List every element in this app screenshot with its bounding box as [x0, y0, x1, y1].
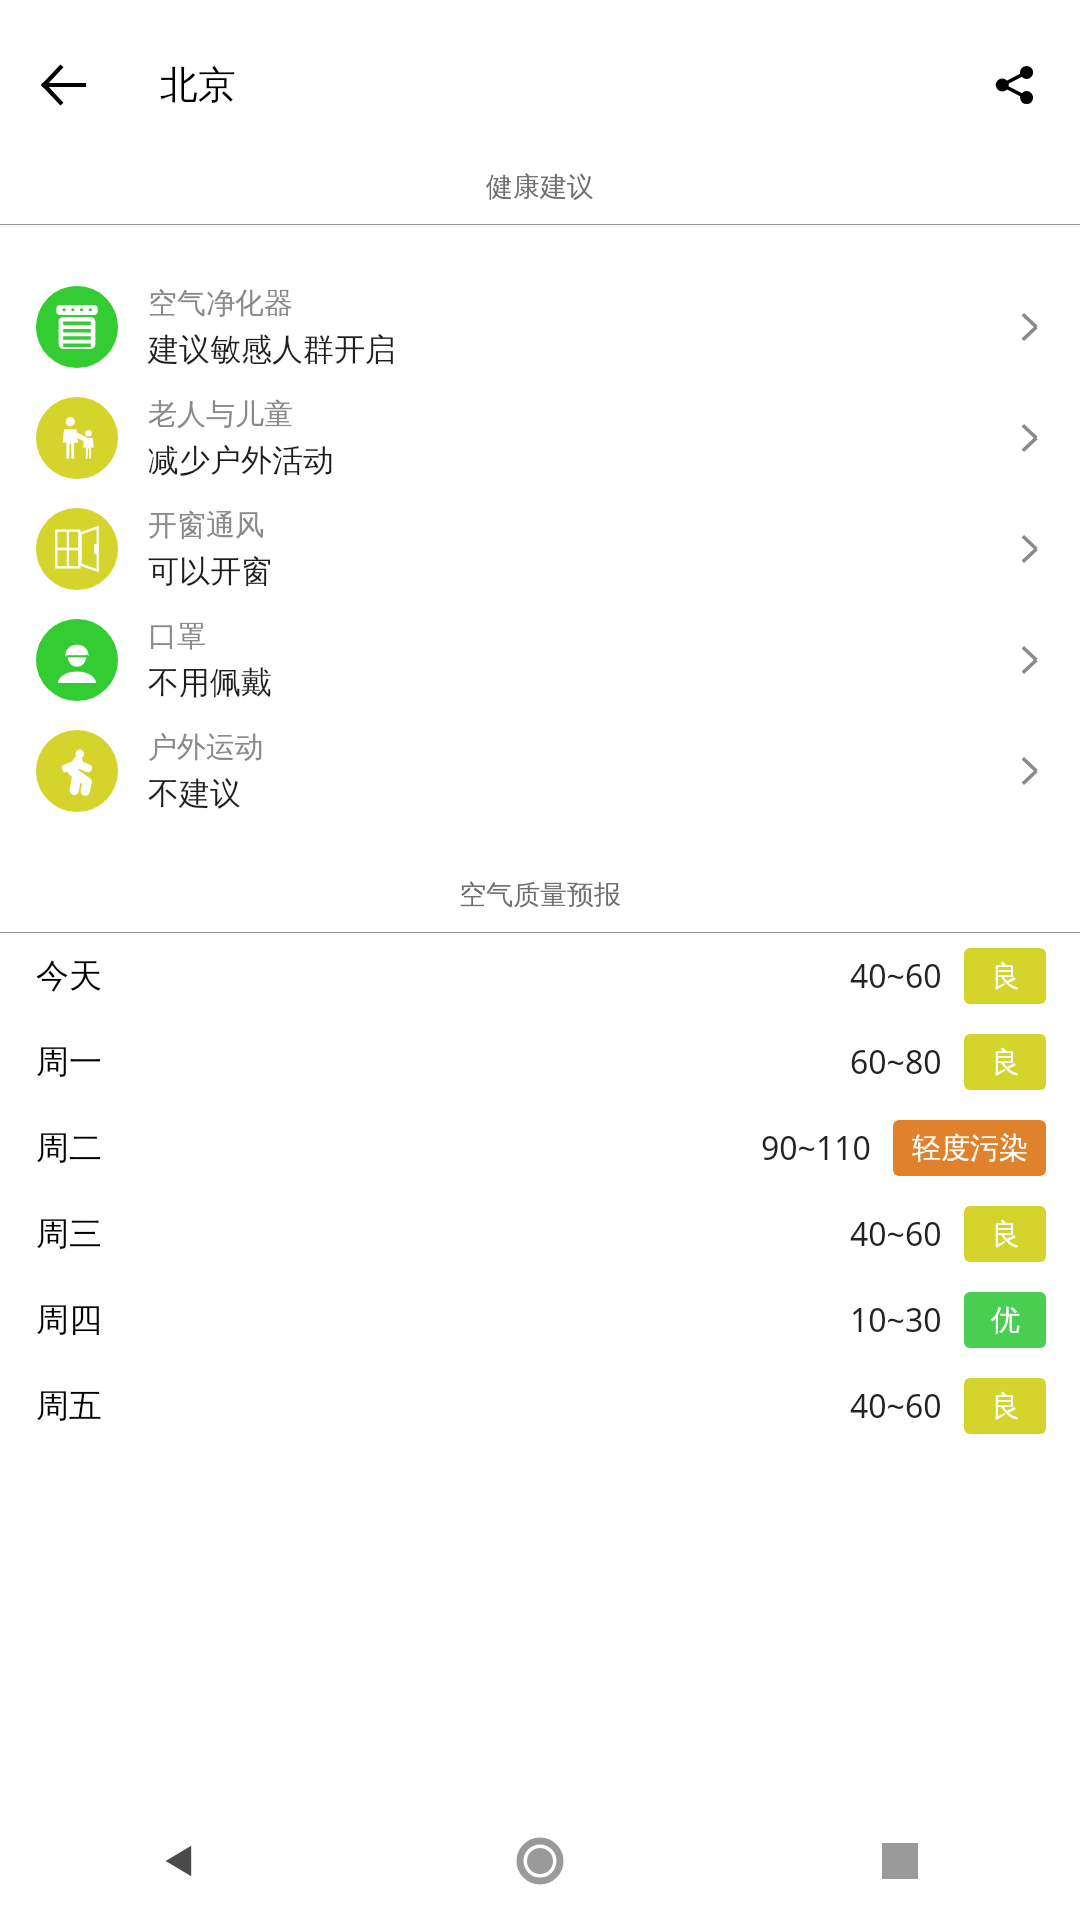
staticText: 良	[991, 1216, 1020, 1253]
staticText: 减少户外活动	[148, 441, 334, 480]
staticText: 开窗通风	[148, 507, 264, 544]
staticText: 空气质量预报	[0, 878, 1080, 912]
staticText: 周五	[36, 1385, 102, 1427]
button[interactable]: 周一	[0, 1019, 1080, 1105]
button[interactable]: 开窗通风	[0, 493, 1080, 604]
staticText: 建议敏感人群开启	[148, 330, 396, 369]
staticText: 健康建议	[0, 170, 1080, 204]
staticText: 空气净化器	[148, 285, 293, 322]
staticText: 周一	[36, 1041, 102, 1083]
staticText: 不用佩戴	[148, 663, 272, 702]
button[interactable]: Share	[978, 49, 1050, 121]
staticText: 可以开窗	[148, 552, 272, 591]
staticText: 良	[991, 958, 1020, 995]
button[interactable]: 周二	[0, 1105, 1080, 1191]
staticText: 10~30	[850, 1298, 942, 1342]
staticText: 老人与儿童	[148, 396, 293, 433]
button[interactable]: Home	[500, 1821, 580, 1901]
staticText: 不建议	[148, 774, 241, 813]
button[interactable]: Back	[28, 49, 100, 121]
staticText: 口罩	[148, 618, 206, 655]
staticText: 良	[991, 1044, 1020, 1081]
button[interactable]: Recents	[860, 1821, 940, 1901]
button[interactable]: 周三	[0, 1191, 1080, 1277]
staticText: 北京	[160, 61, 236, 109]
button[interactable]: 周四	[0, 1277, 1080, 1363]
staticText: 周二	[36, 1127, 102, 1169]
button[interactable]: 户外运动	[0, 715, 1080, 826]
staticText: 优	[991, 1302, 1020, 1339]
staticText: 40~60	[850, 1212, 942, 1256]
button[interactable]: Back	[140, 1821, 220, 1901]
staticText: 40~60	[850, 1384, 942, 1428]
button[interactable]: 口罩	[0, 604, 1080, 715]
staticText: 90~110	[761, 1126, 871, 1170]
staticText: 60~80	[850, 1040, 942, 1084]
staticText: 周四	[36, 1299, 102, 1341]
staticText: 轻度污染	[912, 1130, 1028, 1167]
staticText: 40~60	[850, 954, 942, 998]
button[interactable]: 今天	[0, 933, 1080, 1019]
button[interactable]: 空气净化器	[0, 271, 1080, 382]
staticText: 今天	[36, 955, 102, 997]
button[interactable]: 老人与儿童	[0, 382, 1080, 493]
staticText: 户外运动	[148, 729, 264, 766]
button[interactable]: 周五	[0, 1363, 1080, 1449]
staticText: 良	[991, 1388, 1020, 1425]
staticText: 周三	[36, 1213, 102, 1255]
